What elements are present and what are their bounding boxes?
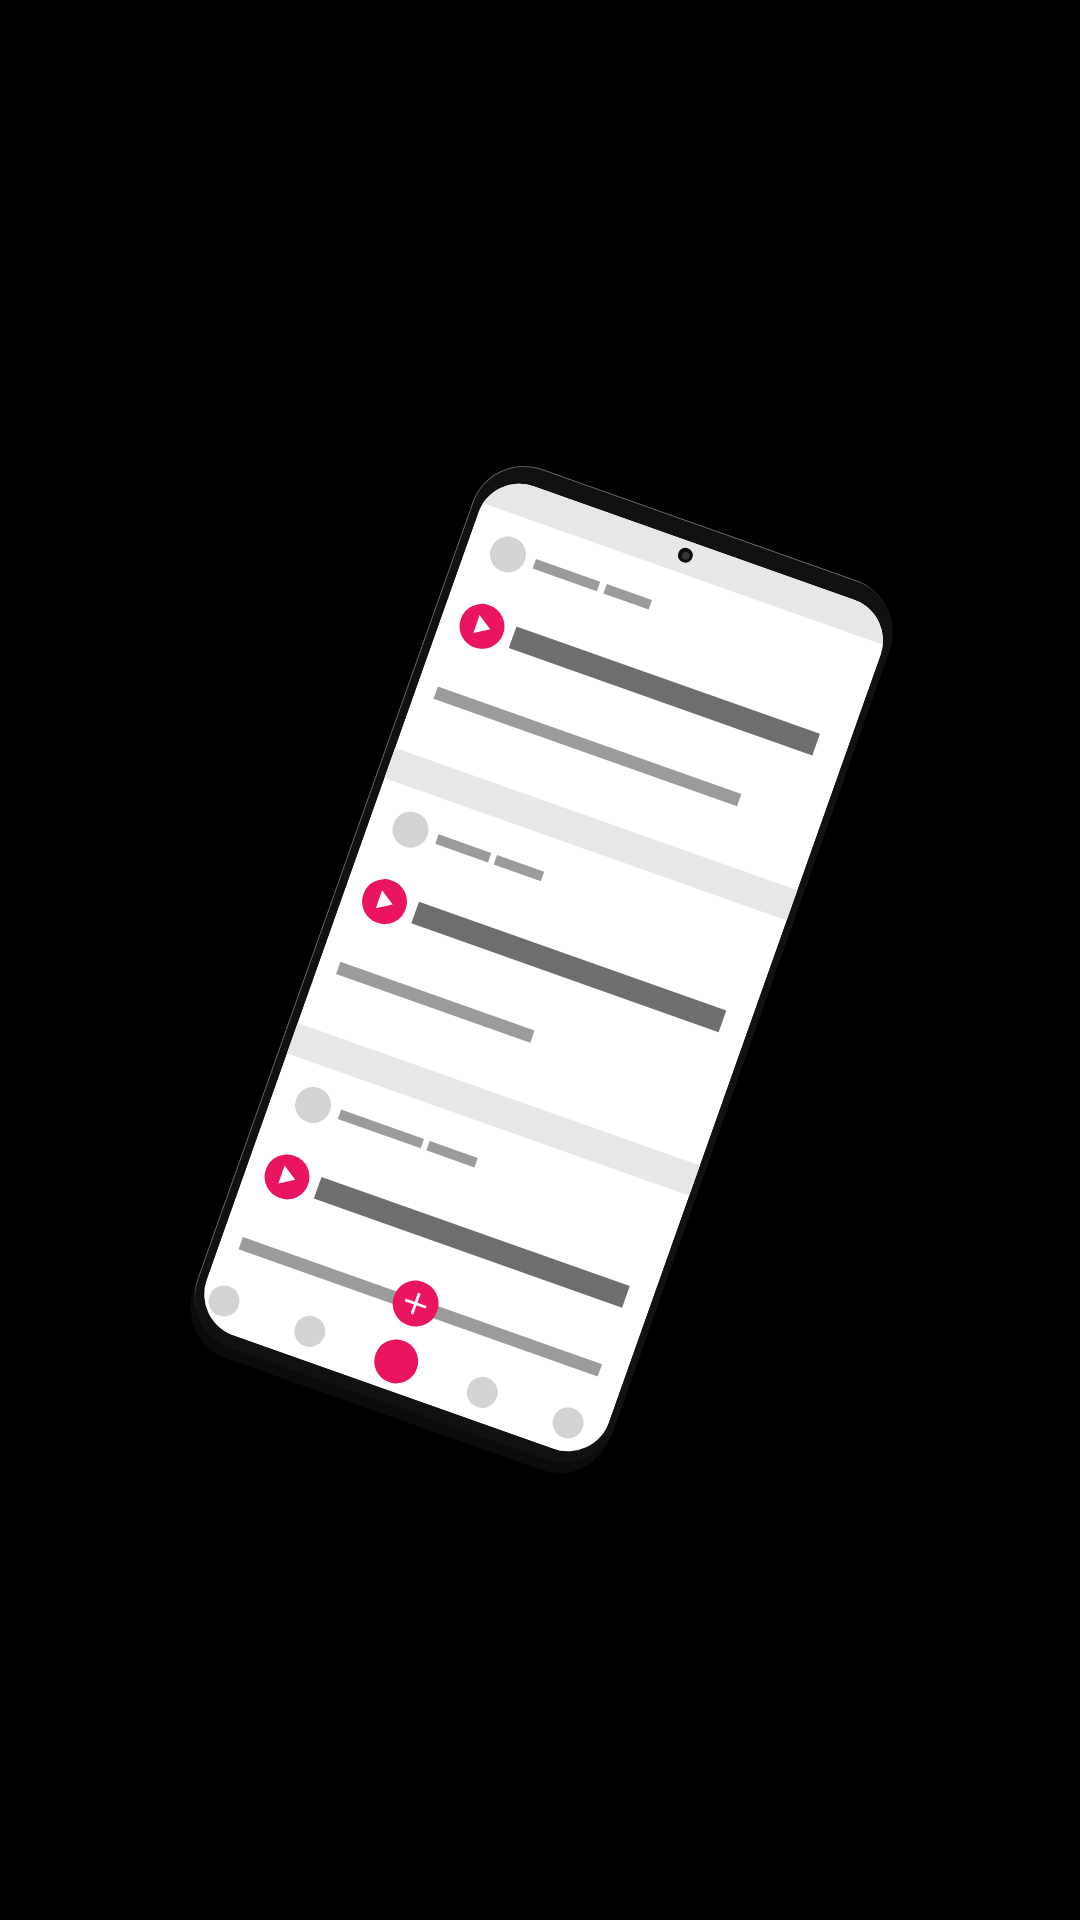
button[interactable]: Play [297,778,787,1166]
button[interactable]: Play [356,873,413,930]
button[interactable]: Alerts [449,1359,515,1425]
button[interactable]: Add [386,1274,445,1333]
button[interactable]: Library [363,1328,429,1395]
button[interactable]: Home [193,1268,257,1333]
button[interactable]: Play [258,1148,316,1206]
button[interactable]: Play [200,1053,689,1441]
button[interactable]: Play [453,598,511,655]
button[interactable]: Profile [535,1389,601,1455]
button[interactable]: Play [395,503,884,890]
button[interactable]: Search [276,1297,343,1364]
